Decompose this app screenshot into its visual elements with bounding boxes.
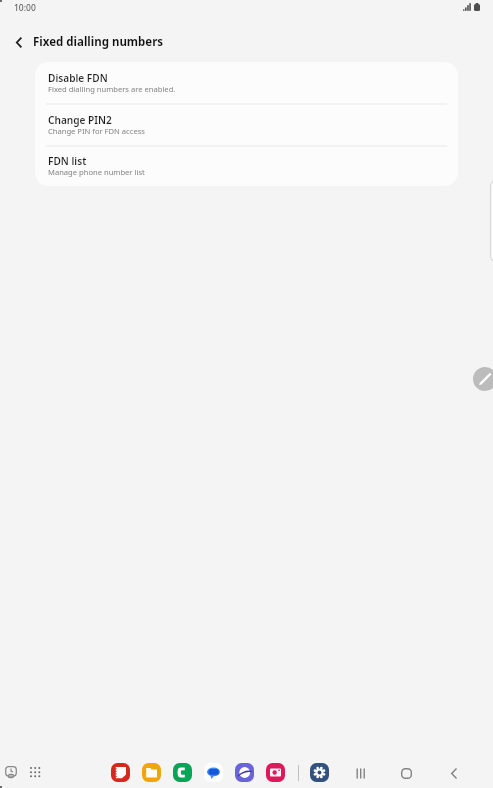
button[interactable]: Camera — [266, 763, 285, 782]
button[interactable]: Apps — [24, 761, 46, 783]
button[interactable]: Disable FDN — [35, 62, 458, 104]
staticText: 10:00 — [14, 2, 36, 14]
button[interactable]: Phone — [173, 763, 192, 782]
button[interactable]: FDN list — [35, 146, 458, 186]
staticText: Change PIN2 — [48, 113, 112, 127]
button[interactable]: Settings — [310, 763, 329, 782]
staticText: Manage phone number list — [48, 167, 145, 177]
button[interactable]: Edge panel — [490, 180, 493, 262]
button[interactable]: Back — [441, 761, 466, 786]
staticText: FDN list — [48, 154, 87, 168]
button[interactable]: My Files — [142, 763, 161, 782]
button[interactable]: S Pen — [473, 367, 493, 391]
button[interactable]: Messages — [204, 763, 223, 782]
button[interactable]: Change PIN2 — [35, 104, 458, 146]
staticText: Disable FDN — [48, 71, 108, 85]
staticText: Fixed dialling numbers are enabled. — [48, 84, 176, 94]
staticText: Change PIN for FDN access — [48, 126, 145, 136]
button[interactable]: Recent apps — [348, 761, 373, 786]
button[interactable]: Back — [4, 22, 34, 62]
button[interactable]: Samsung Notes — [111, 763, 130, 782]
staticText: Fixed dialling numbers — [33, 34, 164, 50]
button[interactable]: Internet — [235, 763, 254, 782]
button[interactable]: Home — [394, 761, 419, 786]
button[interactable]: Recents — [0, 761, 22, 783]
